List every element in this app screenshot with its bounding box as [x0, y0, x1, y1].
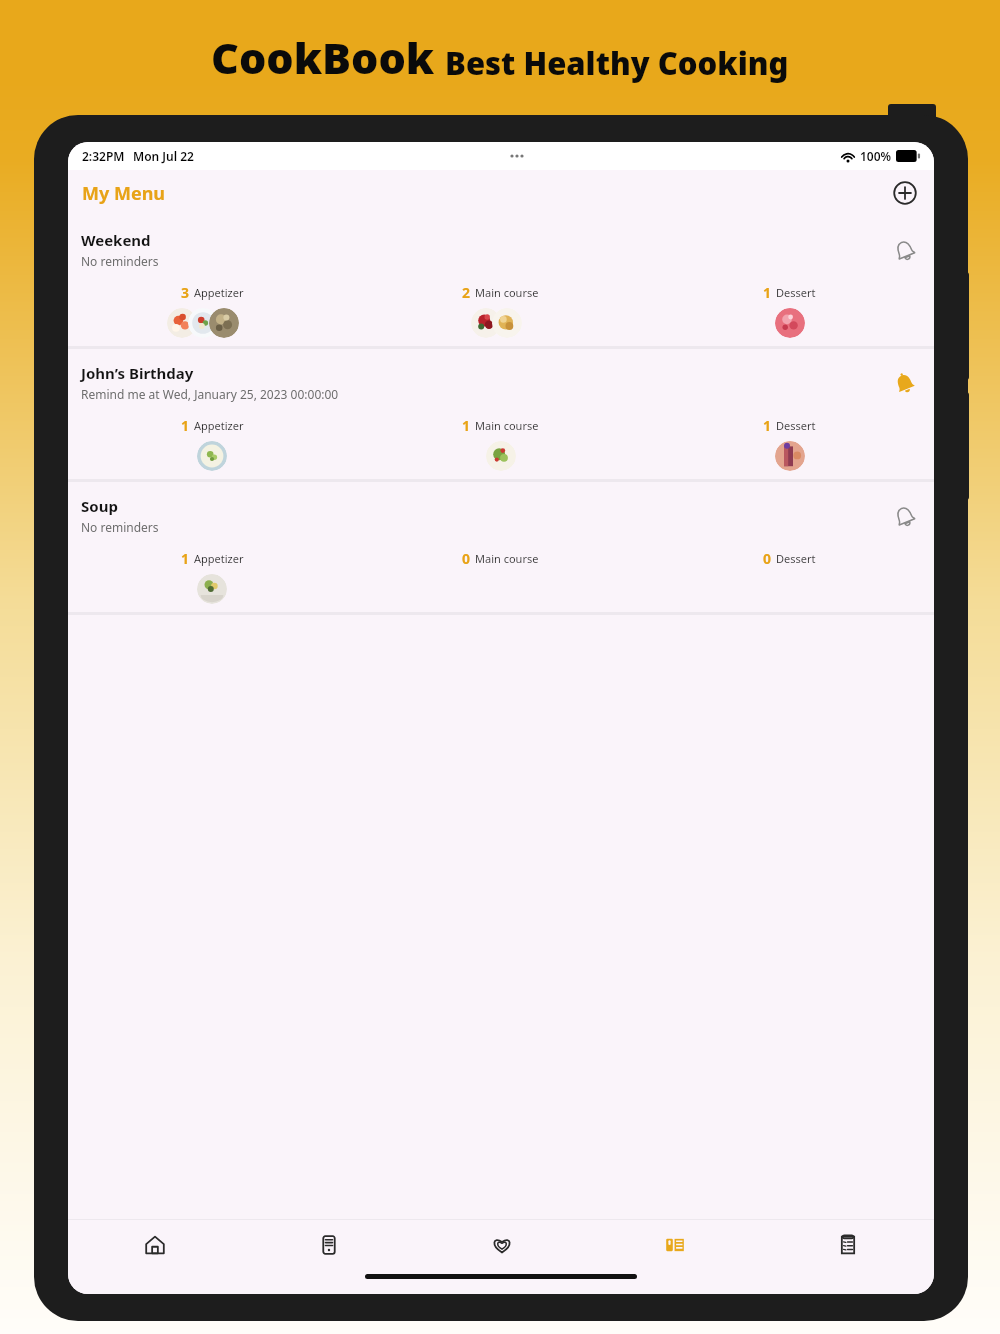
button[interactable]: Home — [68, 1220, 242, 1270]
staticText: Weekend — [81, 230, 151, 250]
button[interactable]: Weekend — [68, 216, 934, 346]
button[interactable]: Reminder on — [888, 367, 922, 401]
button[interactable]: Add menu — [888, 176, 922, 210]
staticText: 3 — [181, 283, 190, 302]
button[interactable]: Shopping list — [761, 1220, 934, 1270]
staticText: 1 — [181, 549, 190, 568]
staticText: 1 — [763, 283, 772, 302]
staticText: Best Healthy Cooking — [445, 42, 789, 84]
staticText: 2:32PM — [82, 148, 125, 164]
staticText: CookBook — [211, 28, 435, 87]
button[interactable]: My Menu — [588, 1220, 761, 1270]
staticText: 1 — [462, 416, 471, 435]
staticText: Mon Jul 22 — [133, 148, 194, 164]
staticText: Main course — [475, 285, 539, 300]
staticText: My Menu — [82, 181, 166, 206]
staticText: Appetizer — [194, 418, 244, 433]
button[interactable]: Reminder off — [888, 500, 922, 534]
button[interactable]: My Menu — [82, 181, 166, 206]
button[interactable]: Recipes — [242, 1220, 415, 1270]
staticText: Soup — [81, 496, 118, 516]
staticText: Main course — [475, 551, 539, 566]
staticText: Main course — [475, 418, 539, 433]
staticText: No reminders — [81, 519, 159, 535]
staticText: 0 — [462, 549, 471, 568]
staticText: 1 — [763, 416, 772, 435]
button[interactable]: Soup — [68, 482, 934, 612]
staticText: 2 — [462, 283, 471, 302]
staticText: 1 — [181, 416, 190, 435]
staticText: 0 — [763, 549, 772, 568]
staticText: No reminders — [81, 253, 159, 269]
staticText: Appetizer — [194, 285, 244, 300]
staticText: Dessert — [776, 285, 816, 300]
button[interactable]: Favorites — [415, 1220, 588, 1270]
staticText: Remind me at Wed, January 25, 2023 00:00… — [81, 386, 339, 402]
staticText: 100% — [860, 148, 892, 164]
staticText: Dessert — [776, 551, 816, 566]
staticText: John’s Birthday — [81, 363, 194, 383]
button[interactable]: Reminder off — [888, 234, 922, 268]
button[interactable]: John’s Birthday — [68, 349, 934, 479]
staticText: Dessert — [776, 418, 816, 433]
staticText: Appetizer — [194, 551, 244, 566]
